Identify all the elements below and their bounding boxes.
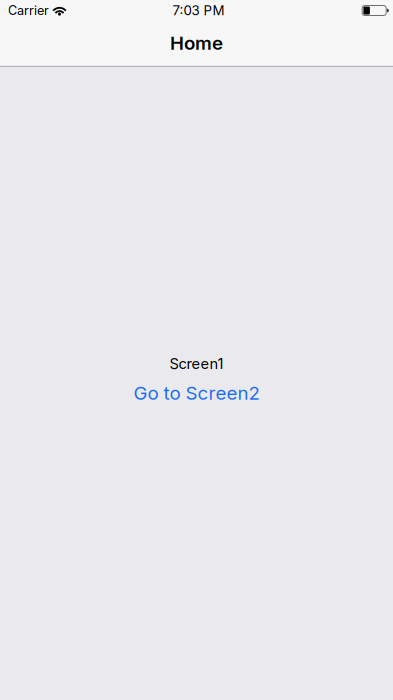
staticText: Screen1	[169, 355, 223, 372]
staticText: Carrier	[8, 3, 49, 18]
staticText: Go to Screen2	[133, 382, 259, 404]
navigationBar: Home	[0, 0, 393, 67]
staticText: 7:03 PM	[172, 2, 224, 18]
staticText: Home	[170, 32, 223, 54]
button[interactable]: Go to Screen2	[117, 373, 275, 409]
